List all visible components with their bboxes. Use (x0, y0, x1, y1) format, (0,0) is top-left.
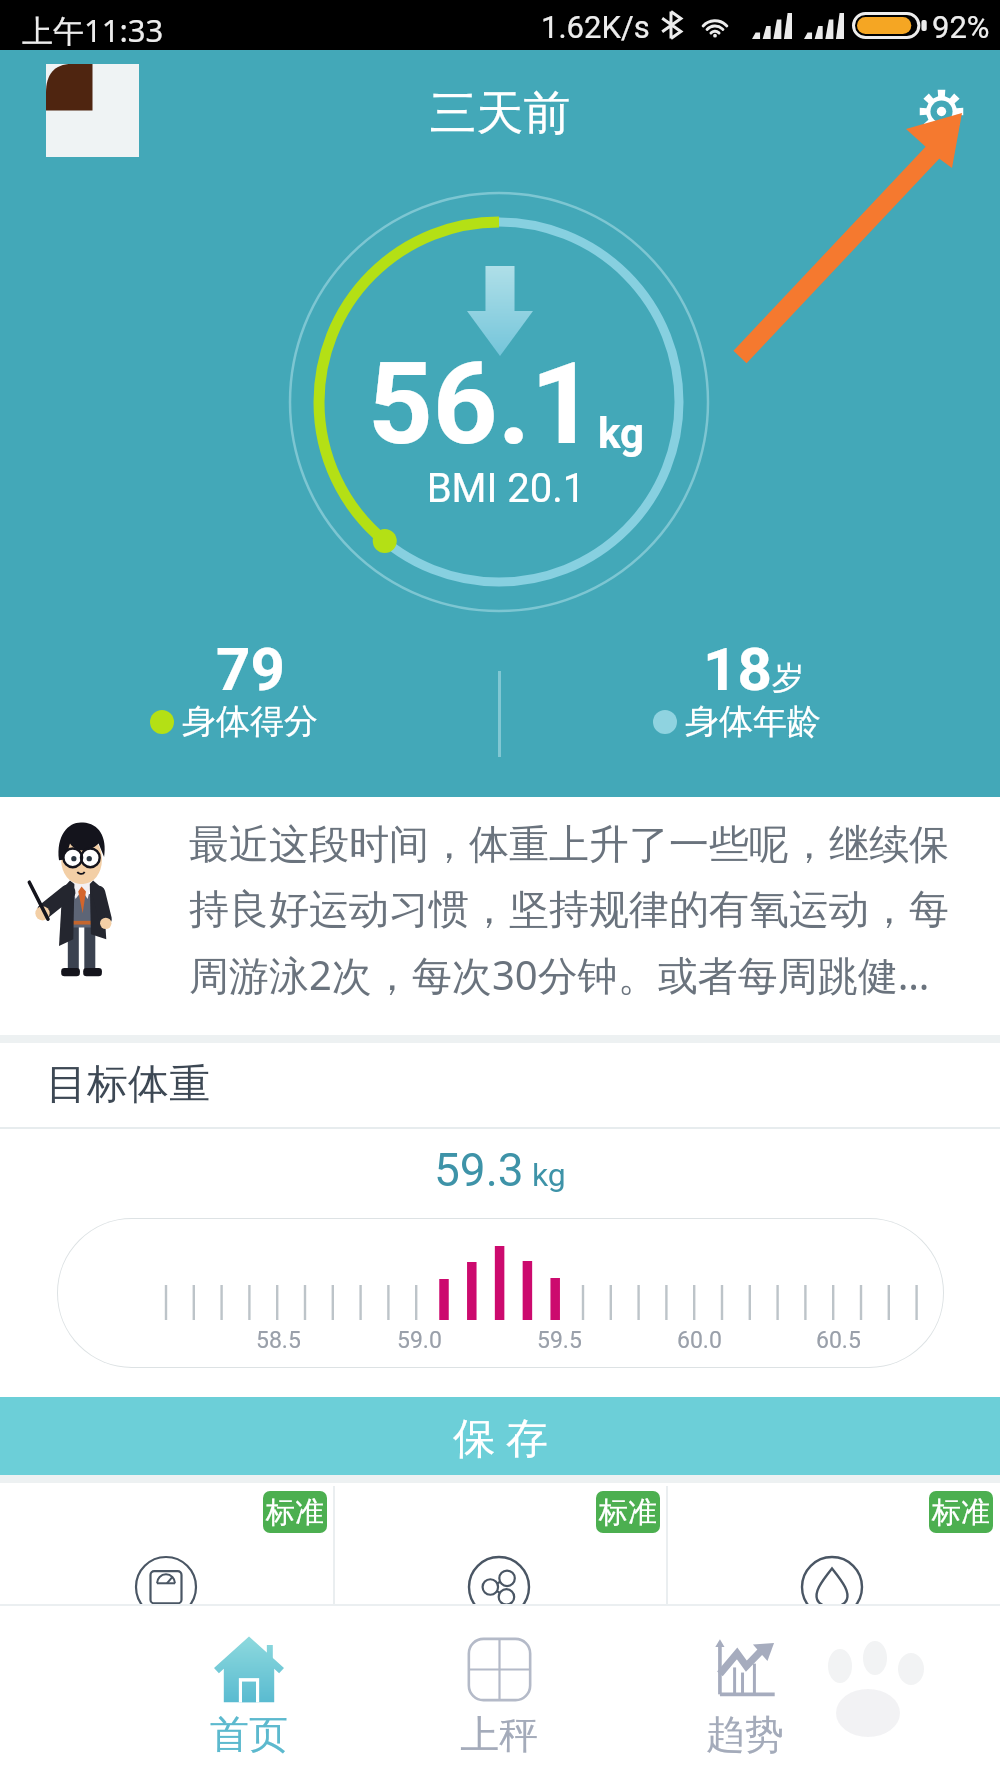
staticText: 身体得分 (182, 700, 318, 743)
staticText: kg (524, 1156, 566, 1194)
button[interactable]: 趋势 (625, 1606, 865, 1778)
staticText: 标准 (266, 1494, 324, 1531)
staticText: 59.3 (434, 1143, 524, 1197)
staticText: 上午11:33 (22, 9, 164, 51)
button[interactable]: Settings (911, 81, 971, 141)
button[interactable]: 保 存 (0, 1397, 1000, 1475)
staticText: 目标体重 (46, 1059, 210, 1111)
staticText: BMI 20.1 (6, 465, 1000, 512)
staticText: 趋势 (625, 1710, 865, 1759)
button[interactable]: 标准 (333, 1483, 666, 1604)
staticText: 身体年龄 (685, 700, 821, 743)
staticText: 标准 (599, 1494, 657, 1531)
staticText: 18 (703, 634, 772, 704)
staticText: 保 存 (453, 1408, 548, 1465)
button[interactable]: 标准 (666, 1483, 999, 1604)
staticText: 60.5 (816, 1327, 861, 1354)
button[interactable]: 上秤 (379, 1606, 619, 1778)
staticText: 岁 (772, 658, 804, 698)
staticText: 三天前 (0, 84, 1000, 143)
staticText: 92% (932, 9, 990, 45)
button[interactable]: 最近这段时间，体重上升了一些呢，继续保持良好运动习惯，坚持规律的有氧运动，每周游… (0, 797, 1000, 1035)
button[interactable]: 首页 (129, 1606, 369, 1778)
staticText: 上秤 (379, 1710, 619, 1759)
staticText: 58.5 (256, 1327, 301, 1354)
staticText: 60.0 (677, 1327, 722, 1354)
staticText: 56.1 (368, 338, 596, 470)
button[interactable]: 标准 (0, 1483, 333, 1604)
staticText: 标准 (932, 1494, 990, 1531)
staticText: 首页 (129, 1710, 369, 1759)
staticText: 1.62K/s (541, 9, 650, 45)
staticText: 79 (216, 634, 285, 704)
staticText: 59.5 (537, 1327, 582, 1354)
button[interactable]: 58.5 (57, 1218, 944, 1368)
staticText: 最近这段时间，体重上升了一些呢，继续保持良好运动习惯，坚持规律的有氧运动，每周游… (189, 819, 964, 1002)
staticText: kg (598, 409, 645, 458)
button[interactable]: Profile (46, 64, 139, 157)
staticText: 59.0 (397, 1327, 442, 1354)
